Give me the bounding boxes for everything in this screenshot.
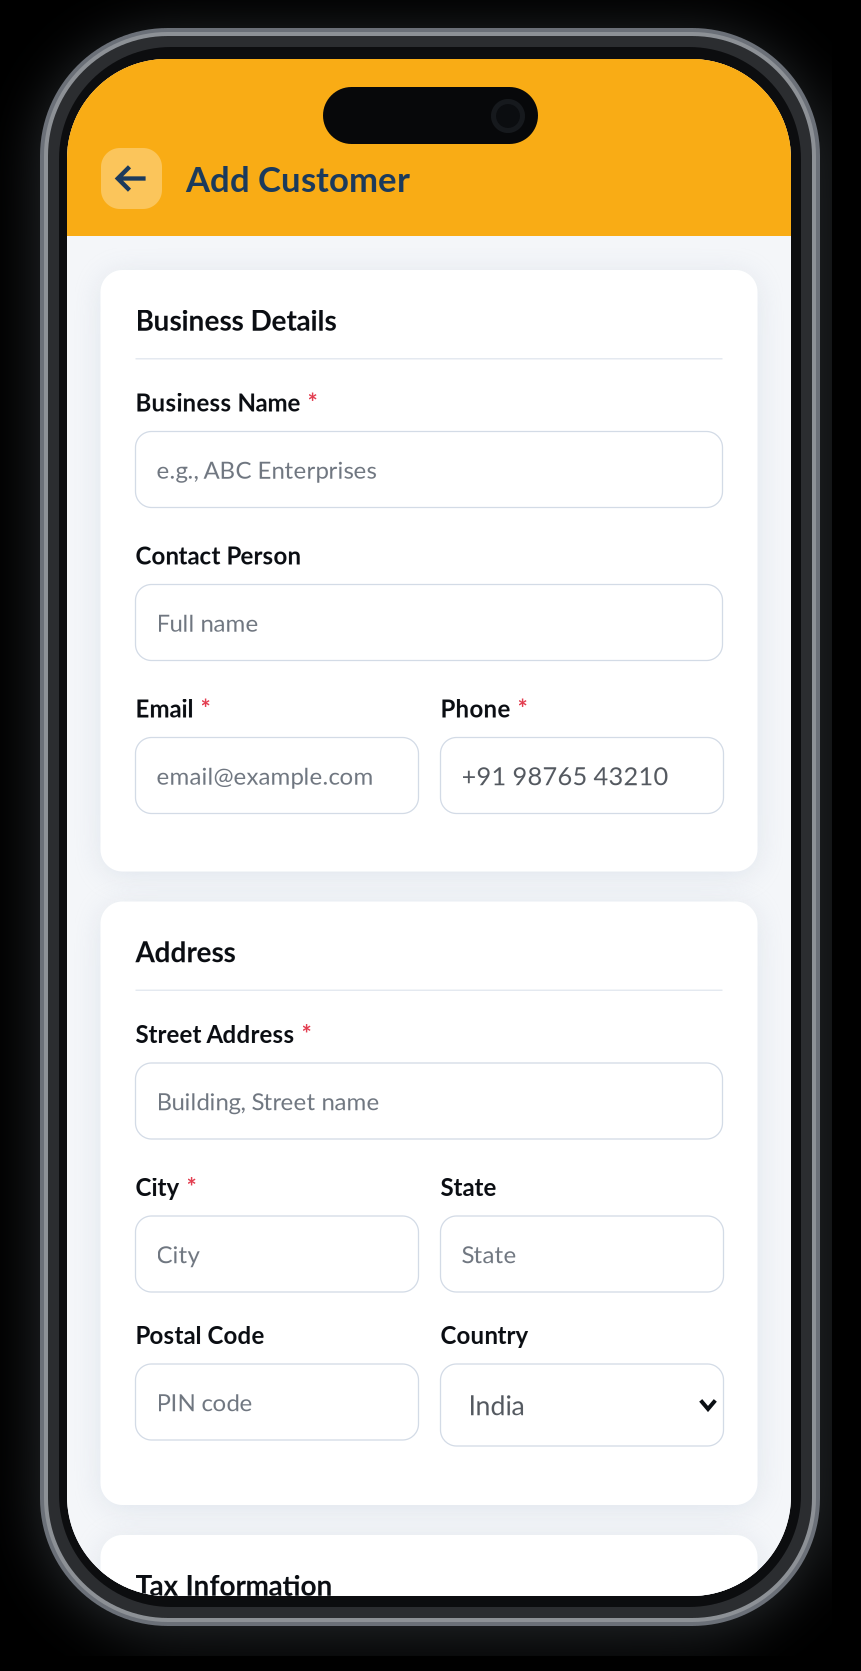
button[interactable]: Back	[101, 148, 162, 209]
staticText: Contact Person	[135, 541, 301, 569]
staticText: *	[307, 388, 317, 416]
staticText: Business Details	[135, 303, 336, 337]
staticText: City	[135, 1172, 179, 1201]
staticText: PIN code	[156, 1388, 252, 1416]
staticText: *	[301, 1019, 311, 1048]
staticText: Business Name	[135, 388, 300, 416]
button[interactable]: +91 98765 43210	[440, 737, 723, 813]
staticText: e.g., ABC Enterprises	[156, 455, 376, 484]
staticText: Country	[440, 1320, 528, 1349]
staticText: Street Address	[135, 1019, 294, 1048]
staticText: City	[156, 1240, 199, 1268]
button[interactable]: Building, Street name	[135, 1063, 722, 1139]
button[interactable]: email@example.com	[135, 737, 418, 813]
staticText: Address	[135, 935, 235, 968]
staticText: GSTIN	[135, 1653, 204, 1671]
staticText: India	[468, 1389, 524, 1421]
staticText: *	[186, 1172, 196, 1201]
staticText: Phone	[440, 694, 510, 722]
staticText: Email	[135, 694, 193, 722]
staticText: Full name	[156, 608, 258, 637]
button[interactable]: City	[135, 1216, 418, 1292]
staticText: Postal Code	[135, 1320, 264, 1349]
staticText: State	[461, 1240, 516, 1268]
button[interactable]: Full name	[135, 584, 722, 660]
staticText: State	[440, 1172, 496, 1201]
button[interactable]: India	[440, 1364, 723, 1446]
staticText: Building, Street name	[156, 1087, 379, 1115]
staticText: *	[200, 694, 210, 722]
staticText: +91 98765 43210	[461, 760, 668, 791]
button[interactable]: State	[440, 1216, 723, 1292]
staticText: email@example.com	[156, 761, 373, 790]
staticText: Tax Information	[135, 1568, 332, 1602]
staticText: Add Customer	[186, 158, 410, 199]
staticText: *	[517, 694, 527, 722]
button[interactable]: e.g., ABC Enterprises	[135, 431, 722, 507]
button[interactable]: PIN code	[135, 1364, 418, 1440]
